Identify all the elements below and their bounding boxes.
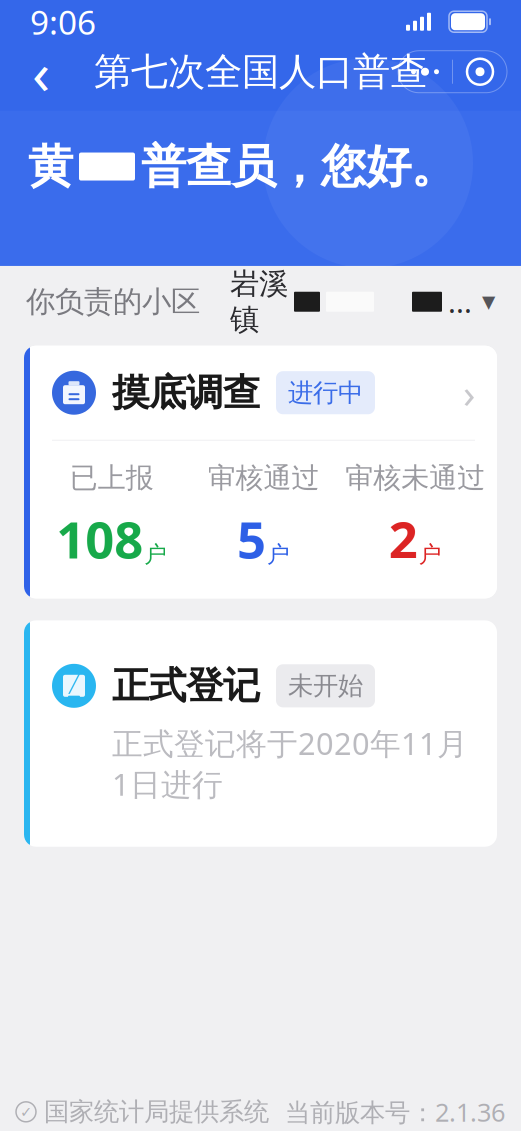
- staticText: 108: [56, 505, 143, 572]
- staticText: 岩溪镇: [230, 266, 288, 338]
- button[interactable]: 岩溪镇: [230, 266, 495, 338]
- button[interactable]: 摸底调查: [24, 346, 497, 598]
- staticText: 审核通过: [207, 461, 319, 495]
- staticText: ✓: [20, 1103, 32, 1120]
- staticText: 9:06: [30, 0, 96, 44]
- staticText: 普查员，您好。: [141, 139, 456, 194]
- staticText: 户: [144, 541, 167, 568]
- staticText: ▼: [482, 292, 495, 312]
- staticText: 正式登记: [112, 663, 260, 709]
- staticText: 审核未通过: [345, 461, 485, 495]
- staticText: ›: [463, 366, 475, 419]
- staticText: 国家统计局提供系统: [44, 1096, 269, 1127]
- staticText: 黄: [28, 139, 73, 194]
- staticText: 2: [389, 505, 418, 572]
- staticText: 户: [419, 541, 442, 568]
- staticText: 正式登记将于2020年11月1日进行: [112, 723, 468, 804]
- staticText: 已上报: [70, 461, 154, 495]
- staticText: 第七次全国人口普查: [94, 49, 427, 95]
- button[interactable]: 关闭: [453, 51, 507, 93]
- button[interactable]: 返回: [14, 45, 68, 99]
- staticText: 5: [237, 505, 266, 572]
- button[interactable]: 更多: [398, 51, 452, 93]
- staticText: ‹: [32, 33, 50, 111]
- staticText: ╱: [69, 674, 79, 694]
- staticText: 摸底调查: [112, 370, 260, 416]
- staticText: 户: [267, 541, 290, 568]
- button[interactable]: ╱: [24, 620, 497, 847]
- staticText: 你负责的小区: [26, 284, 200, 320]
- staticText: 当前版本号：2.1.36: [285, 1095, 505, 1129]
- staticText: ...: [448, 282, 472, 321]
- staticText: 未开始: [288, 670, 363, 701]
- staticText: 进行中: [288, 377, 363, 408]
